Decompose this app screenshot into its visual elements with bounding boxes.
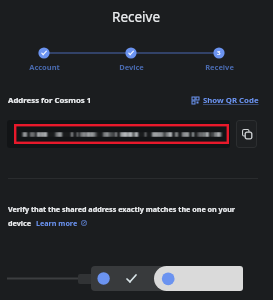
staticText: Receive <box>112 8 161 26</box>
staticText: Learn more <box>36 218 78 228</box>
staticText: 3 <box>217 49 221 57</box>
staticText: Show QR Code <box>203 95 259 106</box>
staticText: device <box>8 218 31 228</box>
button[interactable]: Account <box>14 62 74 72</box>
staticText: Address for Cosmos 1 <box>8 95 92 106</box>
button[interactable]: Receive <box>189 62 249 72</box>
button[interactable]: Copy address <box>236 120 257 148</box>
staticText: Receive <box>205 62 234 72</box>
staticText: Account <box>29 62 60 72</box>
button[interactable]: Device <box>101 62 161 72</box>
button[interactable]: Show QR Code <box>192 95 259 106</box>
staticText: Verify that the shared address exactly m… <box>8 204 236 214</box>
button[interactable] <box>7 120 230 148</box>
button[interactable]: Learn more <box>36 218 87 228</box>
staticText: Device <box>119 62 144 72</box>
